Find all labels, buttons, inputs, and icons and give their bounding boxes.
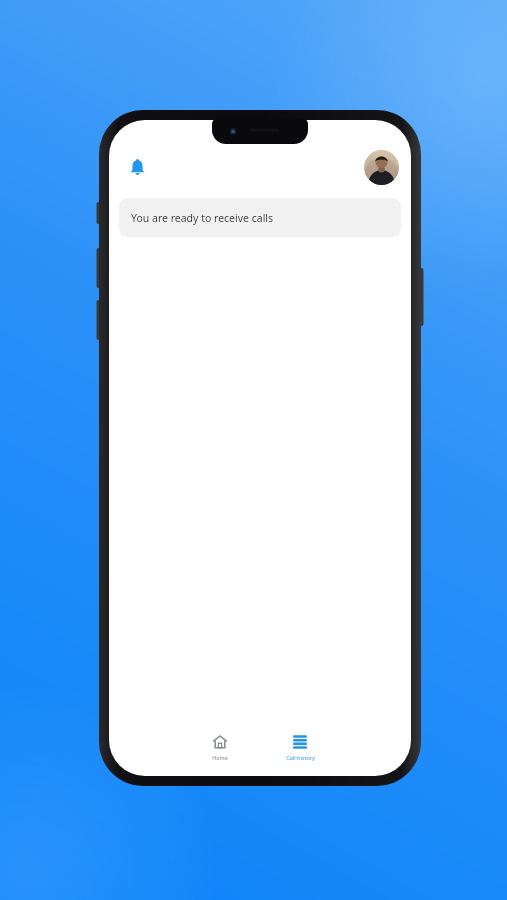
button[interactable]: Notifications (119, 149, 155, 185)
button[interactable]: Profile (364, 150, 399, 185)
staticText: You are ready to receive calls (131, 211, 274, 225)
button[interactable]: You are ready to receive calls (119, 198, 401, 237)
button[interactable]: Call history (261, 728, 339, 765)
button[interactable]: Home (181, 728, 259, 765)
staticText: Call history (286, 754, 315, 761)
staticText: Home (212, 754, 228, 761)
